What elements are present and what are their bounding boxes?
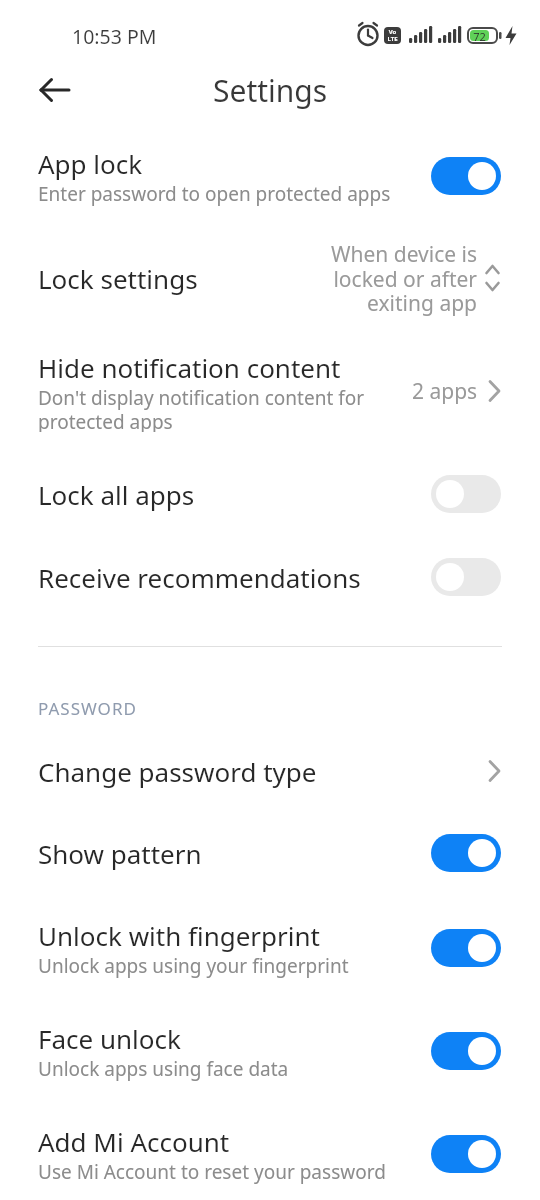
staticText: Lock settings xyxy=(38,261,198,296)
button[interactable]: Receive recommendations xyxy=(0,537,540,617)
staticText: When device is locked or after exiting a… xyxy=(330,240,477,317)
button[interactable] xyxy=(431,1032,501,1070)
staticText: Add Mi Account xyxy=(38,1124,230,1159)
button[interactable]: App lock xyxy=(0,136,540,216)
button[interactable]: Lock settings xyxy=(0,238,540,318)
button[interactable]: Change password type xyxy=(0,731,540,811)
button[interactable] xyxy=(431,558,501,596)
staticText: Change password type xyxy=(38,754,317,789)
staticText: Vo LTE xyxy=(384,28,401,43)
staticText: Face unlock xyxy=(38,1021,181,1056)
staticText: 2 apps xyxy=(412,377,478,406)
button[interactable] xyxy=(431,929,501,967)
button[interactable] xyxy=(431,834,501,872)
staticText: Unlock apps using face data xyxy=(38,1056,289,1082)
staticText: Hide notification content xyxy=(38,350,341,385)
button[interactable] xyxy=(431,475,501,513)
button[interactable]: Unlock with fingerprint xyxy=(0,908,540,988)
staticText: Lock all apps xyxy=(38,477,195,512)
button[interactable]: Face unlock xyxy=(0,1011,540,1091)
button[interactable] xyxy=(38,78,72,102)
button[interactable] xyxy=(431,1135,501,1173)
staticText: Settings xyxy=(213,70,328,111)
button[interactable]: Show pattern xyxy=(0,813,540,893)
button[interactable]: Hide notification content xyxy=(0,350,540,432)
button[interactable] xyxy=(431,157,501,195)
staticText: Enter password to open protected apps xyxy=(38,181,391,207)
staticText: Show pattern xyxy=(38,836,202,871)
staticText: App lock xyxy=(38,146,143,181)
staticText: Don't display notification content for p… xyxy=(38,385,365,432)
button[interactable]: Lock all apps xyxy=(0,454,540,534)
staticText: Unlock with fingerprint xyxy=(38,918,320,953)
staticText: 72 xyxy=(470,29,489,44)
staticText: PASSWORD xyxy=(38,697,137,720)
staticText: Use Mi Account to reset your password xyxy=(38,1159,386,1185)
staticText: 10:53 PM xyxy=(72,23,157,50)
staticText: Receive recommendations xyxy=(38,560,361,595)
staticText: Unlock apps using your fingerprint xyxy=(38,953,349,979)
button[interactable]: Add Mi Account xyxy=(0,1114,540,1194)
